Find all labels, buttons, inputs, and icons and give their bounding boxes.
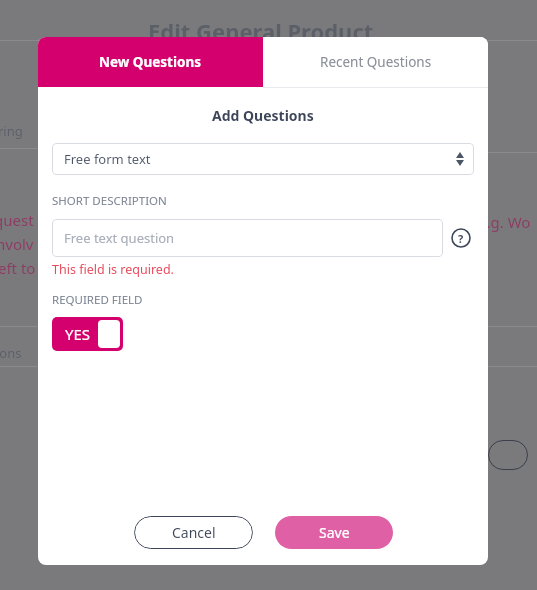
staticText: quest xyxy=(0,210,34,230)
staticText: YES xyxy=(65,324,91,344)
staticText: e.g. Wo xyxy=(478,212,531,232)
button[interactable]: Help xyxy=(448,225,474,251)
staticText: Free text question xyxy=(64,229,175,247)
staticText: Free form text xyxy=(64,150,151,168)
staticText: Save xyxy=(319,523,350,542)
button[interactable]: Free form text xyxy=(52,143,474,175)
button[interactable]: New Questions xyxy=(38,37,263,87)
staticText: nvolv xyxy=(0,234,34,254)
staticText: eft to xyxy=(0,258,36,278)
button[interactable]: YES xyxy=(52,317,123,351)
staticText: Recent Questions xyxy=(320,53,432,71)
staticText: Add Questions xyxy=(212,106,314,125)
button[interactable]: Free text question xyxy=(52,219,443,257)
button[interactable]: Cancel xyxy=(134,516,253,549)
button[interactable]: Recent Questions xyxy=(263,37,488,87)
staticText: Cancel xyxy=(172,523,216,542)
staticText: ions xyxy=(0,344,22,362)
staticText: New Questions xyxy=(99,53,202,71)
staticText: This field is required. xyxy=(52,261,174,278)
staticText: Edit General Product xyxy=(148,16,374,46)
staticText: ring xyxy=(0,122,23,140)
button[interactable]: Save xyxy=(275,516,393,549)
staticText: ? xyxy=(458,231,464,246)
staticText: REQUIRED FIELD xyxy=(52,292,143,308)
staticText: SHORT DESCRIPTION xyxy=(52,193,167,209)
